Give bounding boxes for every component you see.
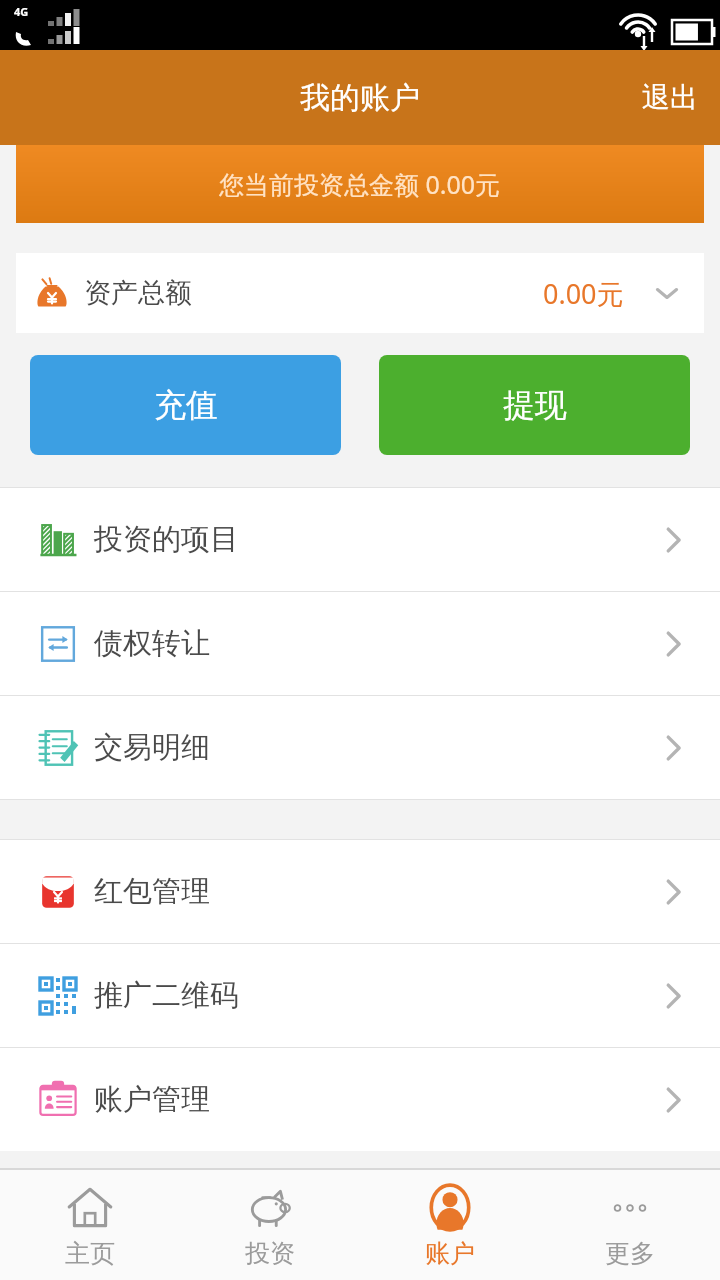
staticText: 推广二维码 [94,977,239,1014]
button[interactable]: 红包管理 [0,840,720,943]
staticText: 账户管理 [94,1081,210,1118]
button[interactable]: 投资 [180,1170,360,1280]
button[interactable]: 推广二维码 [0,944,720,1047]
staticText: 主页 [65,1238,115,1269]
staticText: 账户 [425,1238,475,1269]
staticText: 退出 [642,80,698,115]
staticText: 交易明细 [94,729,210,766]
staticText: 资产总额 [84,276,192,310]
other: 账户 [424,1182,476,1234]
button[interactable]: 账户 [360,1170,540,1280]
staticText: 4G [14,4,29,19]
button[interactable]: 投资的项目 [0,488,720,591]
button[interactable]: 更多 [540,1170,720,1280]
staticText: 投资 [245,1238,295,1269]
button[interactable]: 债权转让 [0,592,720,695]
button[interactable]: 账户管理 [0,1048,720,1151]
other: 更多 [604,1182,656,1234]
staticText: 红包管理 [94,873,210,910]
staticText: 充值 [154,385,218,425]
staticText: 投资的项目 [94,521,239,558]
button[interactable]: 提现 [379,355,690,455]
staticText: 债权转让 [94,625,210,662]
staticText: 您当前投资总金额 0.00元 [219,167,501,201]
staticText: 我的账户 [300,79,420,117]
button[interactable]: 交易明细 [0,696,720,799]
staticText: 更多 [605,1238,655,1269]
button[interactable]: 资产总额 [16,253,704,333]
button[interactable]: 退出 [620,60,720,135]
staticText: 0.00元 [543,275,624,312]
button[interactable]: 主页 [0,1170,180,1280]
button[interactable]: 充值 [30,355,341,455]
staticText: 提现 [503,385,567,425]
